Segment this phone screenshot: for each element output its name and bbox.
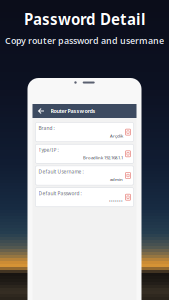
button[interactable]: Type/IP :	[35, 144, 133, 163]
staticText: Arçelik	[110, 133, 123, 139]
staticText: Type/IP :	[38, 147, 58, 153]
staticText: Copy router password and usermane	[5, 34, 164, 47]
staticText: Brand :	[38, 125, 54, 131]
button[interactable]: Brand :	[35, 122, 133, 142]
staticText: Router Passwords	[50, 107, 95, 115]
staticText: •••••••	[109, 198, 123, 204]
staticText: Broadlink 192.168.1.1	[83, 155, 123, 160]
staticText: Default Username :	[38, 168, 83, 175]
staticText: Default Password :	[38, 190, 81, 196]
button[interactable]: Back	[35, 104, 47, 117]
staticText: admin	[110, 176, 123, 182]
button[interactable]: Default Username :	[35, 166, 133, 185]
button[interactable]: Default Password :	[35, 188, 133, 207]
staticText: Password Detail	[24, 9, 145, 29]
